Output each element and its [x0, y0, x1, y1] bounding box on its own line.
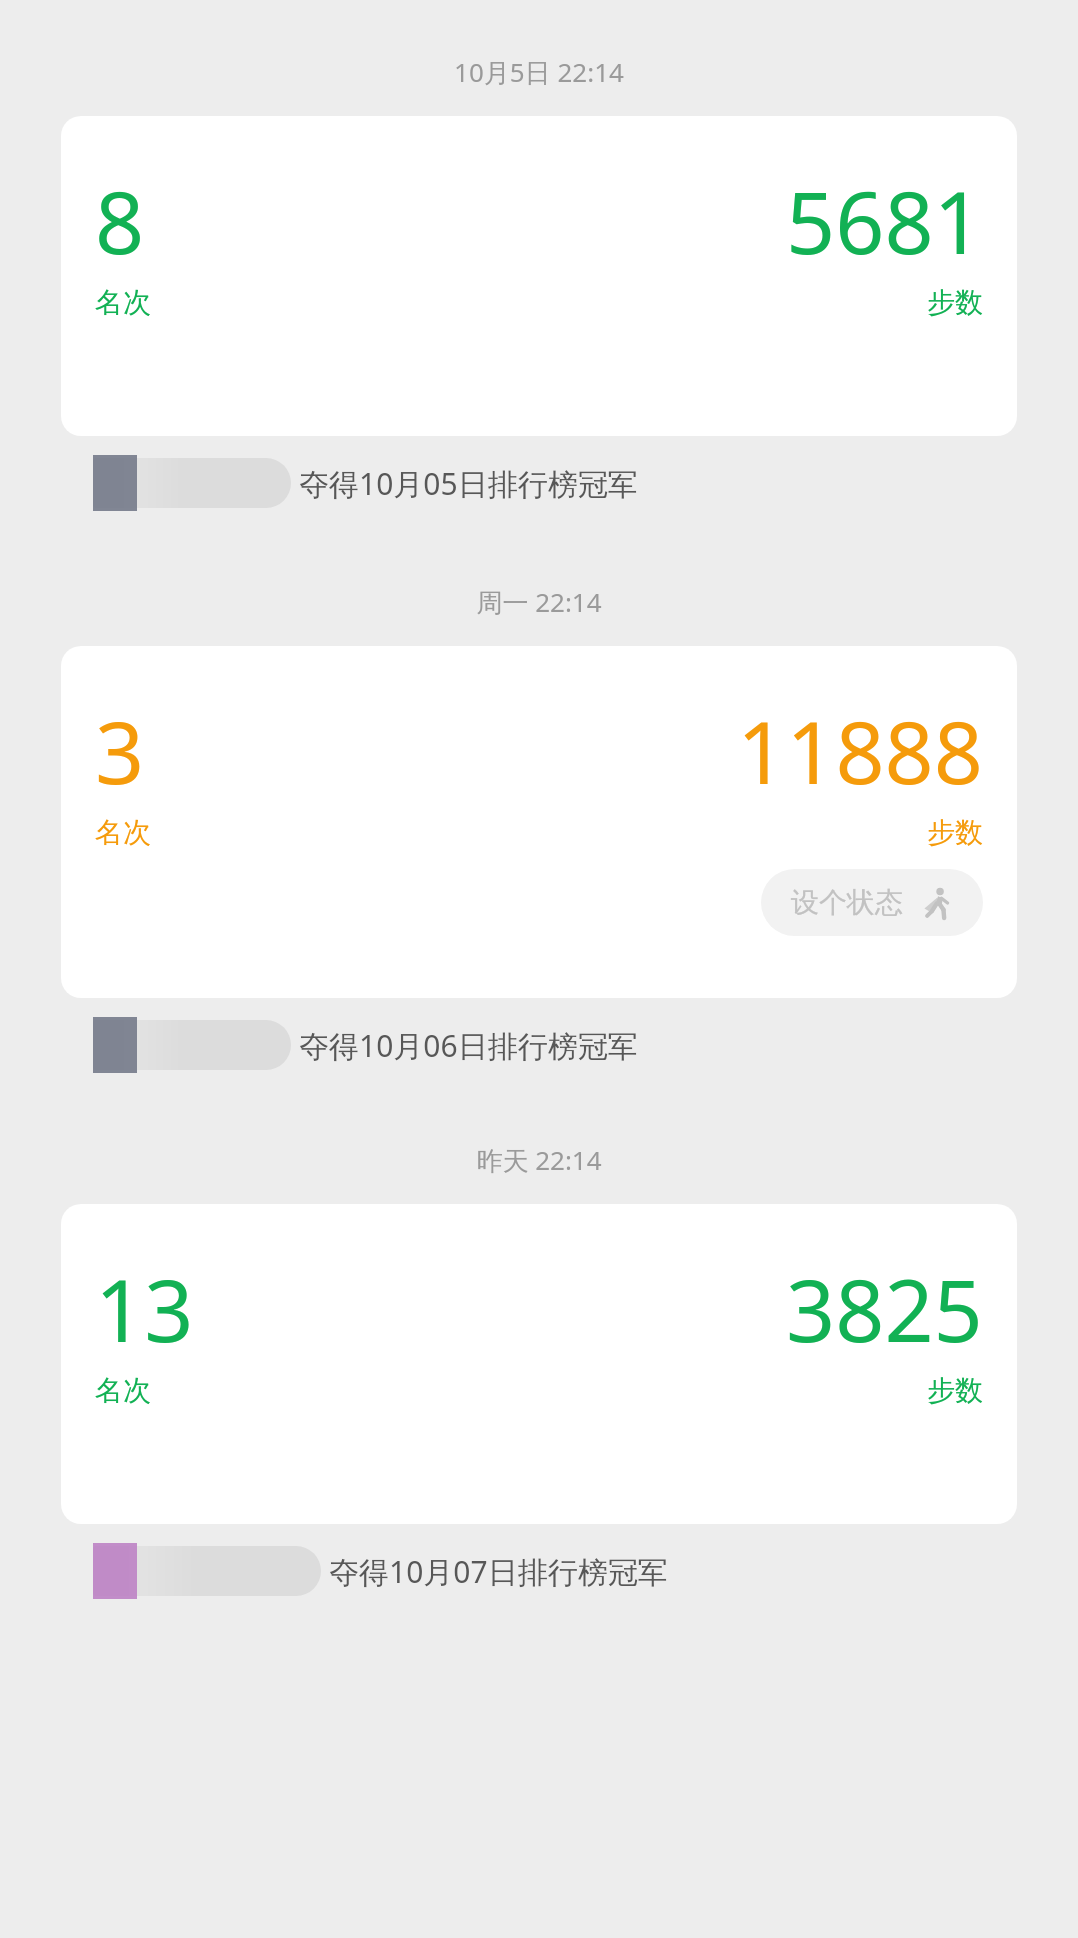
staticText: 13	[95, 1250, 194, 1367]
staticText: 5681	[786, 162, 983, 279]
other: Walking status	[919, 886, 953, 920]
button[interactable]: 夺得10月07日排行榜冠军	[61, 1542, 1038, 1600]
staticText: 名次	[95, 285, 151, 320]
staticText: 3825	[786, 1250, 983, 1367]
staticText: 夺得10月06日排行榜冠军	[299, 1025, 638, 1066]
button[interactable]: 8	[61, 116, 1017, 436]
button[interactable]: 13	[61, 1204, 1017, 1524]
button[interactable]: 设个状态	[761, 869, 983, 936]
staticText: 步数	[927, 285, 983, 320]
staticText: 10月5日 22:14	[454, 54, 624, 90]
staticText: 3	[95, 692, 145, 809]
staticText: 名次	[95, 815, 151, 850]
staticText: 设个状态	[791, 885, 903, 920]
staticText: 11888	[737, 692, 983, 809]
staticText: 步数	[927, 815, 983, 850]
staticText: 周一 22:14	[476, 584, 602, 620]
button[interactable]: 3	[61, 646, 1017, 998]
staticText: 8	[95, 162, 145, 279]
staticText: 夺得10月07日排行榜冠军	[329, 1551, 668, 1592]
staticText: 名次	[95, 1373, 151, 1408]
staticText: 夺得10月05日排行榜冠军	[299, 463, 638, 504]
button[interactable]: 夺得10月05日排行榜冠军	[61, 454, 1038, 512]
staticText: 昨天 22:14	[476, 1142, 602, 1178]
button[interactable]: 夺得10月06日排行榜冠军	[61, 1016, 1038, 1074]
staticText: 步数	[927, 1373, 983, 1408]
